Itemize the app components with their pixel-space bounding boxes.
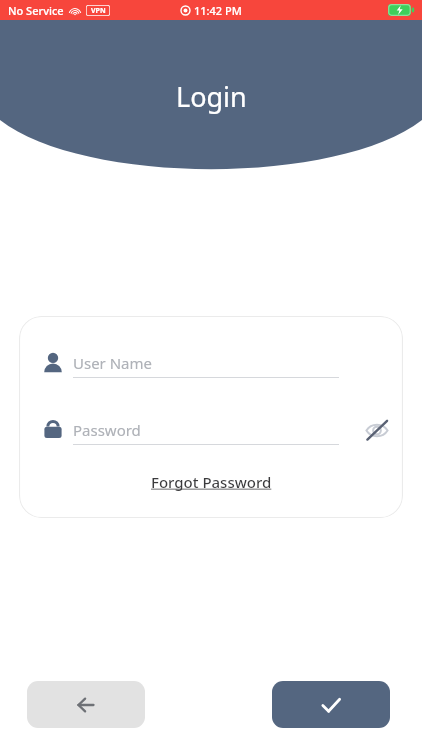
staticText: Forgot Password — [151, 472, 272, 492]
button[interactable]: Forgot Password — [145, 468, 278, 496]
staticText: Login — [176, 78, 247, 115]
button[interactable]: User Name — [19, 344, 403, 384]
staticText: User Name — [73, 353, 153, 373]
staticText: 11:42 PM — [194, 3, 242, 18]
button[interactable]: Password — [19, 411, 403, 451]
button[interactable]: Back — [27, 681, 145, 728]
staticText: No Service — [8, 3, 64, 18]
staticText: Password — [73, 420, 141, 440]
button[interactable]: Confirm — [272, 681, 390, 728]
staticText: VPN — [91, 6, 106, 16]
button[interactable]: Toggle password visibility — [359, 412, 395, 448]
